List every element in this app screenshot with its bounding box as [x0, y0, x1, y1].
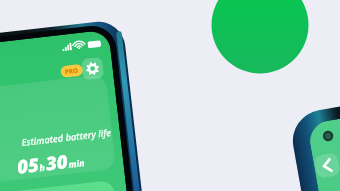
button[interactable]: Battery optimizer app promotional illust… [0, 0, 340, 191]
other: Battery optimizer app promotional illust… [0, 0, 340, 191]
